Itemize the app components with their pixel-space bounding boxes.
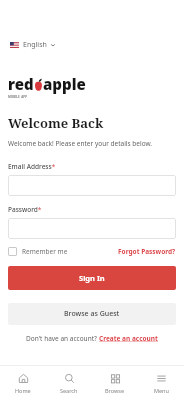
- button[interactable]: Remember me: [8, 247, 68, 256]
- staticText: Email Address*: [8, 162, 56, 171]
- button[interactable]: Don't have an account?: [26, 334, 158, 343]
- button[interactable]: [8, 218, 176, 239]
- button[interactable]: Sign In: [8, 266, 176, 290]
- staticText: Menu: [154, 387, 169, 394]
- button[interactable]: Home: [0, 366, 46, 400]
- button[interactable]: Forgot Password?: [118, 247, 176, 256]
- staticText: Browse as Guest: [64, 309, 120, 319]
- staticText: apple: [43, 74, 86, 94]
- button[interactable]: Search: [46, 366, 92, 400]
- staticText: Sign In: [79, 273, 105, 283]
- button[interactable]: English: [8, 38, 58, 52]
- staticText: English: [23, 40, 47, 50]
- staticText: Forgot Password?: [118, 247, 176, 256]
- staticText: Browse: [105, 387, 125, 394]
- staticText: Search: [60, 387, 78, 394]
- staticText: Remember me: [22, 247, 68, 256]
- staticText: Welcome back! Please enter your details …: [8, 139, 153, 148]
- staticText: Home: [15, 387, 31, 394]
- staticText: red: [8, 74, 34, 94]
- button[interactable]: Menu: [138, 366, 184, 400]
- staticText: Welcome Back: [8, 114, 104, 132]
- button[interactable]: Browse: [92, 366, 138, 400]
- button[interactable]: Browse as Guest: [8, 303, 176, 325]
- button[interactable]: [8, 175, 176, 196]
- staticText: Don't have an account?: [26, 334, 99, 343]
- staticText: MOBILE APP: [8, 95, 28, 99]
- staticText: Password*: [8, 205, 42, 214]
- staticText: Create an account: [99, 334, 158, 343]
